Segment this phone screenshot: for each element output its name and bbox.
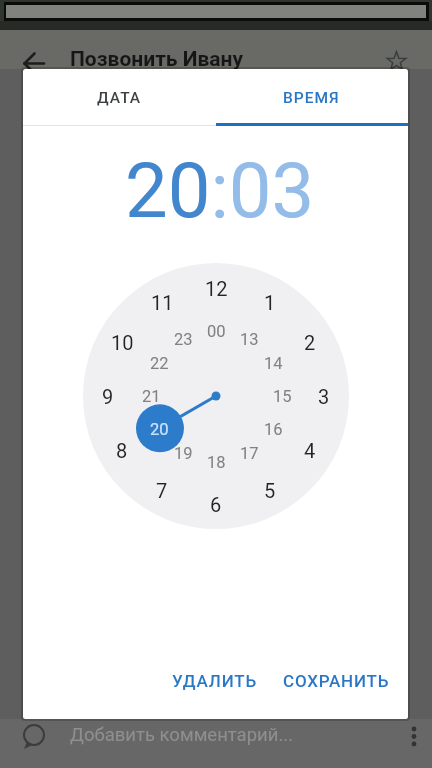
staticText: 2 bbox=[304, 331, 316, 354]
staticText: 6 bbox=[210, 493, 222, 516]
staticText: 17 bbox=[240, 444, 259, 463]
staticText: 22 bbox=[150, 354, 169, 373]
button[interactable]: УДАЛИТЬ bbox=[172, 663, 257, 699]
staticText: УДАЛИТЬ bbox=[172, 671, 257, 691]
staticText: 7 bbox=[156, 479, 168, 502]
staticText: 4 bbox=[304, 439, 316, 462]
staticText: 8 bbox=[116, 439, 128, 462]
button[interactable] bbox=[0, 719, 432, 768]
button[interactable]: СОХРАНИТЬ bbox=[283, 663, 390, 699]
staticText: 9 bbox=[102, 385, 114, 408]
staticText: 12 bbox=[205, 277, 228, 300]
staticText: 00 bbox=[207, 322, 226, 341]
staticText: 3 bbox=[318, 385, 330, 408]
staticText: 20 bbox=[150, 420, 169, 439]
staticText: 10 bbox=[111, 331, 134, 354]
staticText: 5 bbox=[264, 479, 276, 502]
staticText: 20:03 bbox=[125, 146, 315, 235]
staticText: 13 bbox=[240, 330, 259, 349]
staticText: 15 bbox=[273, 387, 292, 406]
staticText: 16 bbox=[264, 420, 283, 439]
staticText: 21 bbox=[142, 387, 161, 406]
staticText: ДАТА bbox=[97, 89, 142, 107]
staticText: 1 bbox=[264, 291, 276, 314]
button[interactable] bbox=[400, 718, 428, 754]
button[interactable]: ДАТА bbox=[23, 69, 215, 127]
staticText: 14 bbox=[264, 354, 283, 373]
staticText: СОХРАНИТЬ bbox=[283, 671, 390, 691]
button[interactable]: ВРЕМЯ bbox=[215, 69, 408, 127]
staticText: 18 bbox=[207, 453, 226, 472]
staticText: Позвонить Ивану bbox=[70, 47, 244, 72]
staticText: 19 bbox=[174, 444, 193, 463]
staticText: Добавить комментарий... bbox=[70, 724, 294, 746]
staticText: ВРЕМЯ bbox=[283, 89, 340, 107]
button[interactable] bbox=[17, 46, 51, 80]
staticText: 11 bbox=[151, 291, 174, 314]
staticText: 23 bbox=[174, 330, 193, 349]
button[interactable] bbox=[380, 45, 413, 78]
